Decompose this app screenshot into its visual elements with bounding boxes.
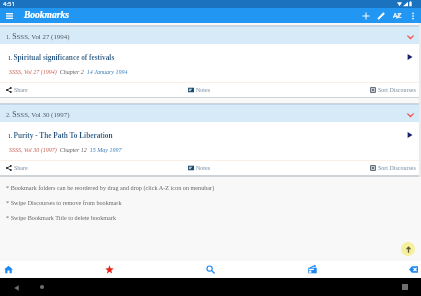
button[interactable]: 1. Spiritual significance of festivals [0, 44, 421, 98]
button[interactable]: Favorites [104, 264, 115, 275]
button[interactable]: Collapse [404, 109, 416, 121]
button[interactable]: Share [6, 83, 28, 97]
button[interactable]: Sort Discourses [370, 83, 416, 97]
button[interactable]: 2. SSSS, Vol 30 (1997) [0, 105, 421, 122]
button[interactable]: Back [10, 281, 23, 294]
button[interactable]: Home [36, 281, 48, 293]
staticText: SSSS, Vol 27 (1994) Chapter 2 14 January… [9, 69, 128, 76]
button[interactable]: Collapse [404, 31, 416, 43]
staticText: * Swipe Bookmark Title to delete bookmar… [6, 214, 116, 221]
button[interactable]: Edit [375, 10, 387, 22]
button[interactable]: Home [3, 264, 14, 275]
button[interactable]: 1. SSSS, Vol 27 (1994) [0, 27, 421, 44]
staticText: * Swipe Discourses to remove from bookma… [6, 199, 122, 206]
staticText: SSSS, Vol 30 (1997) Chapter 12 15 May 19… [9, 147, 122, 154]
staticText: 1. Purity - The Path To Liberation [8, 131, 113, 139]
staticText: Sort Discourses [378, 87, 416, 94]
staticText: 2. SSSS, Vol 30 (1997) [6, 110, 70, 119]
staticText: 1. SSSS, Vol 27 (1994) [6, 32, 70, 41]
button[interactable]: Share [6, 161, 28, 175]
button[interactable]: Add bookmark [360, 10, 372, 22]
staticText: Notes [196, 165, 210, 172]
button[interactable]: Exit [408, 264, 419, 275]
button[interactable]: More options [407, 10, 419, 22]
staticText: AZ [393, 11, 402, 21]
staticText: * Bookmark folders can be reordered by d… [6, 184, 215, 191]
button[interactable]: Recents [399, 281, 411, 293]
button[interactable]: Sort A to Z [391, 10, 403, 22]
staticText: 1. Spiritual significance of festivals [8, 53, 115, 61]
button[interactable]: Navigation menu [4, 10, 15, 21]
staticText: Bookmarks [24, 10, 69, 21]
button[interactable]: Notes [188, 83, 210, 97]
button[interactable]: Search [205, 264, 216, 275]
staticText: Share [14, 165, 28, 172]
button[interactable]: Radio [307, 264, 318, 275]
staticText: 4:51 [3, 0, 15, 8]
staticText: Share [14, 87, 28, 94]
staticText: Notes [196, 87, 210, 94]
button[interactable]: Sort Discourses [370, 161, 416, 175]
button[interactable]: Notes [188, 161, 210, 175]
button[interactable]: 1. Purity - The Path To Liberation [0, 122, 421, 176]
staticText: Sort Discourses [378, 165, 416, 172]
button[interactable]: Scroll to top [401, 242, 415, 256]
